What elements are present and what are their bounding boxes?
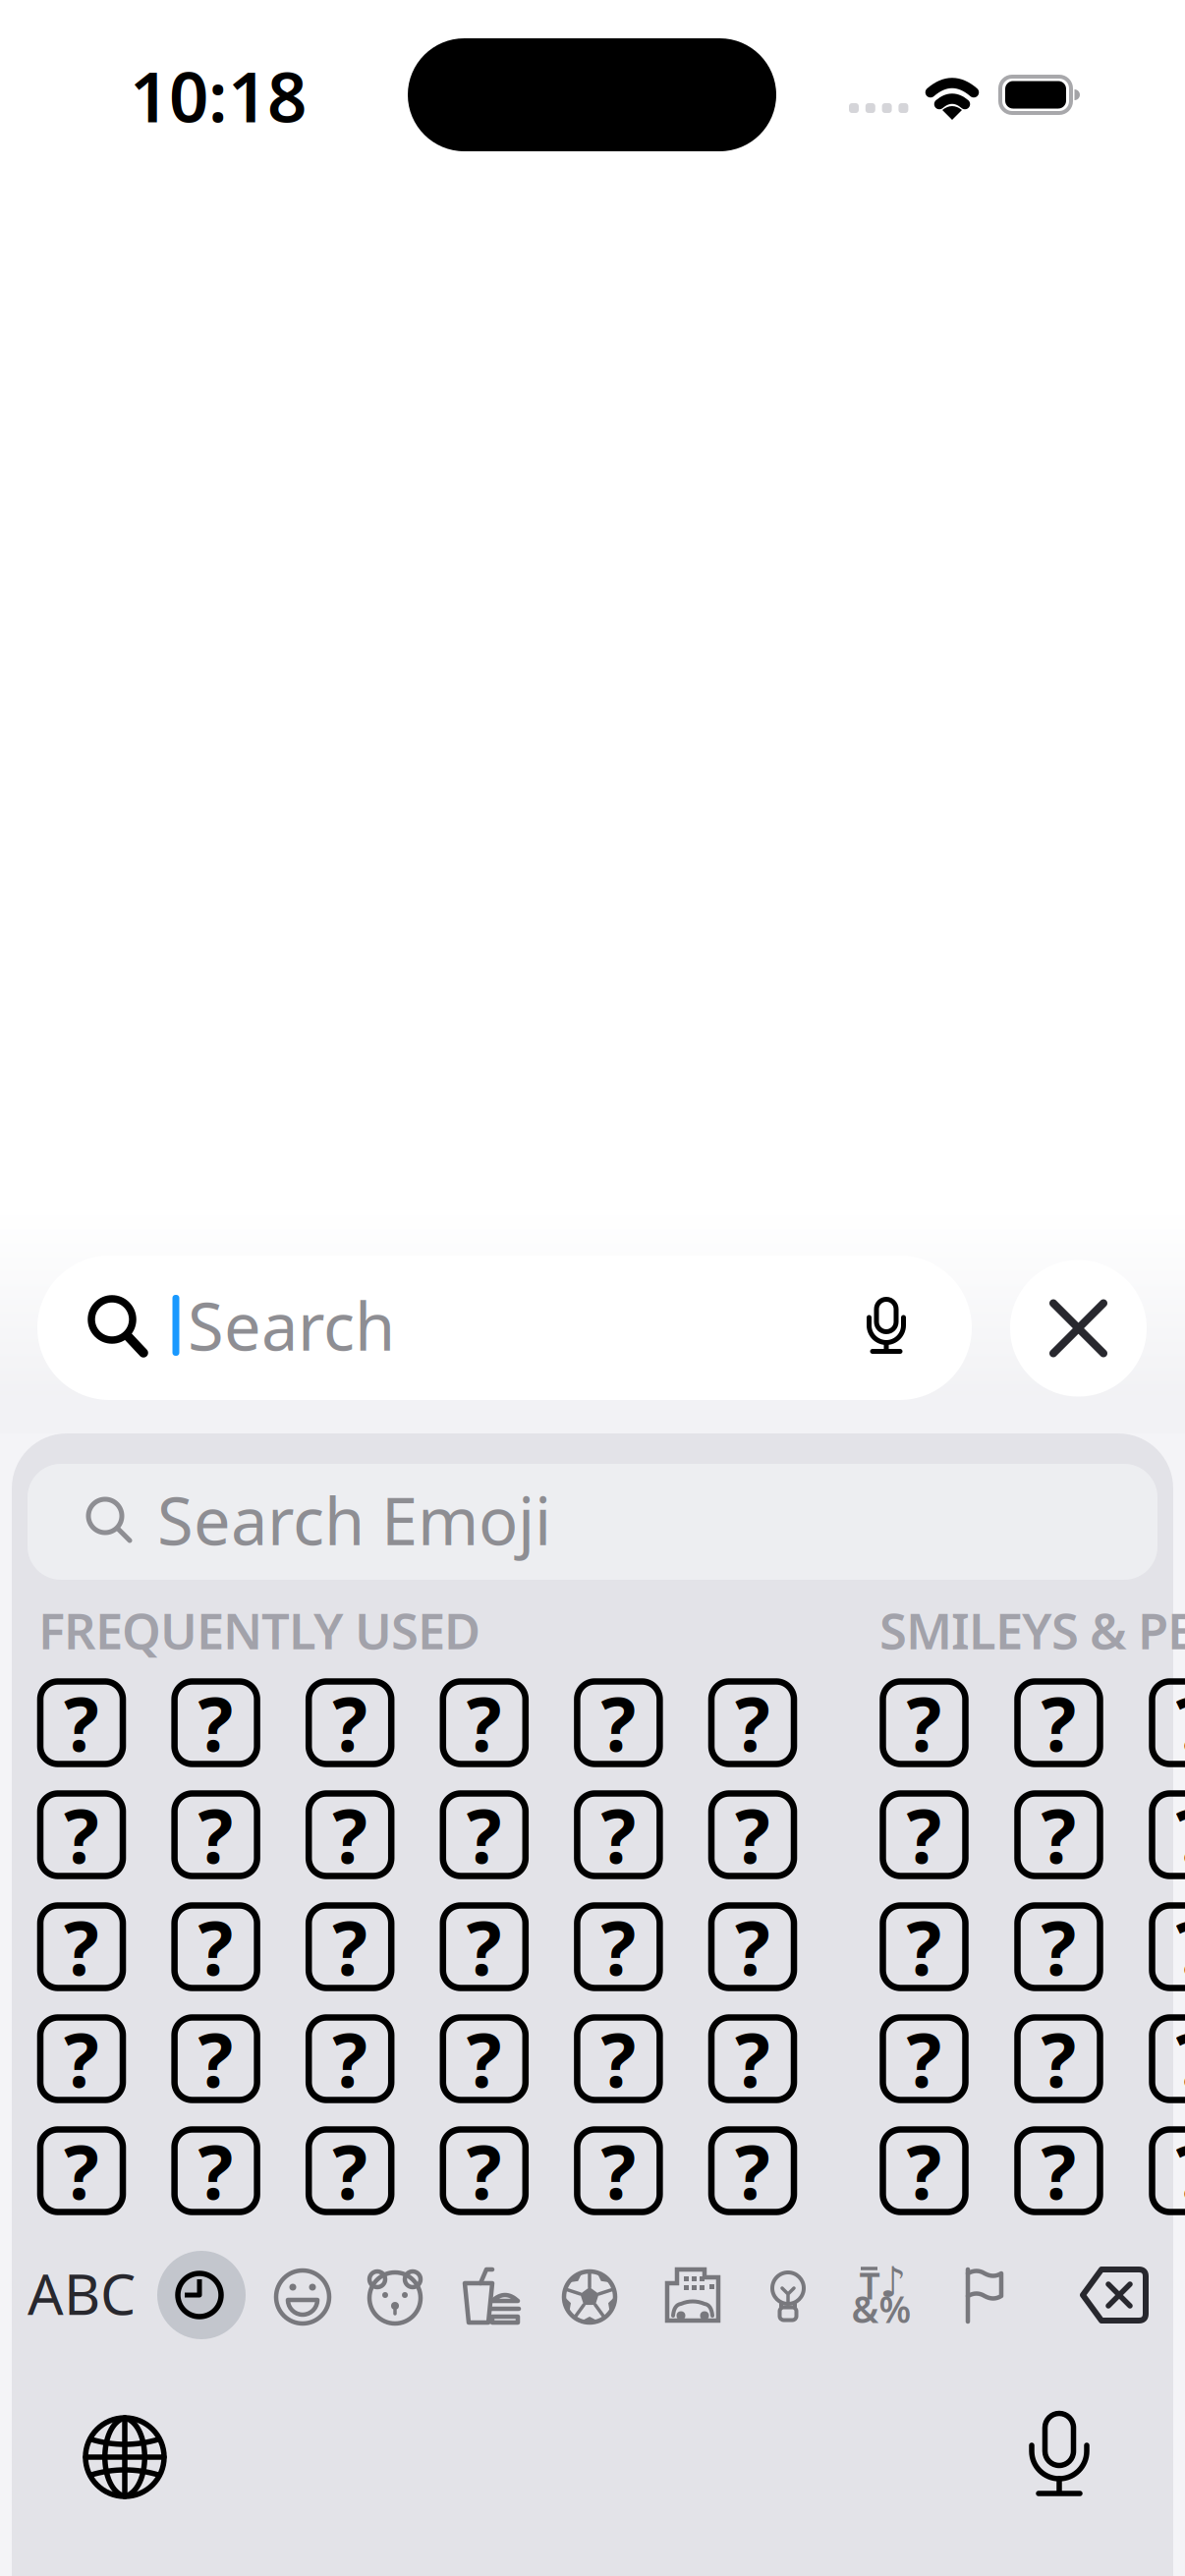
button[interactable]: ? [0, 0, 1185, 2576]
button[interactable]: ? [0, 0, 1185, 2576]
staticText: ? [64, 1674, 99, 1771]
button[interactable]: ? [0, 0, 1185, 2576]
staticText: FREQUENTLY USED [38, 1597, 480, 1663]
button[interactable]: ? [0, 0, 1185, 2576]
staticText: ABC [28, 2256, 136, 2330]
staticText: ? [1041, 1674, 1076, 1771]
button[interactable] [0, 0, 1185, 2576]
button[interactable]: ? [0, 0, 1185, 2576]
button[interactable] [0, 0, 1185, 2576]
button[interactable]: ? [0, 0, 1185, 2576]
button[interactable] [0, 0, 1185, 2576]
button[interactable]: Search [0, 0, 1185, 2576]
button[interactable]: ? [0, 0, 1185, 2576]
button[interactable]: ? [0, 0, 1185, 2576]
staticText: ? [467, 2122, 502, 2219]
staticText: ? [332, 1898, 368, 1995]
button[interactable] [0, 0, 1185, 2576]
staticText: ? [735, 2010, 770, 2107]
button[interactable]: ? [0, 0, 1185, 2576]
button[interactable]: ? [0, 0, 1185, 2576]
staticText: ? [906, 2010, 942, 2107]
button[interactable]: ? [0, 0, 1185, 2576]
button[interactable]: ? [0, 0, 1185, 2576]
button[interactable]: ? [0, 0, 1185, 2576]
staticText: ? [332, 1786, 368, 1883]
button[interactable]: ? [0, 0, 1185, 2576]
staticText: ? [64, 2010, 99, 2107]
button[interactable] [0, 0, 1185, 2576]
button[interactable] [0, 0, 1185, 2576]
button[interactable]: ? [0, 0, 1185, 2576]
button[interactable]: ? [0, 0, 1185, 2576]
button[interactable]: ? [0, 0, 1185, 2576]
staticText: ? [1041, 2010, 1076, 2107]
button[interactable]: ? [0, 0, 1185, 2576]
button[interactable]: ? [0, 0, 1185, 2576]
staticText: T [859, 2261, 880, 2310]
staticText: ? [467, 1674, 502, 1771]
staticText: ? [64, 1898, 99, 1995]
button[interactable]: ? [0, 0, 1185, 2576]
staticText: ? [467, 1786, 502, 1883]
button[interactable]: ? [0, 0, 1185, 2576]
staticText: ? [332, 1674, 368, 1771]
button[interactable]: ? [0, 0, 1185, 2576]
staticText: ? [601, 1898, 636, 1995]
button[interactable]: ? [0, 0, 1185, 2576]
staticText: ? [1041, 1898, 1076, 1995]
staticText: ? [601, 1786, 636, 1883]
staticText: ? [1041, 2122, 1076, 2219]
staticText: ? [1176, 2010, 1185, 2107]
button[interactable] [0, 0, 1185, 2576]
button[interactable]: ? [0, 0, 1185, 2576]
staticText: ? [906, 1898, 942, 1995]
staticText: ? [198, 2010, 233, 2107]
button[interactable]: ? [0, 0, 1185, 2576]
button[interactable]: ? [0, 0, 1185, 2576]
button[interactable] [0, 0, 1185, 2576]
staticText: ? [601, 1674, 636, 1771]
button[interactable]: ? [0, 0, 1185, 2576]
button[interactable] [0, 0, 1185, 2576]
button[interactable]: ? [0, 0, 1185, 2576]
button[interactable]: Search Emoji [0, 0, 1185, 2576]
button[interactable]: ? [0, 0, 1185, 2576]
staticText: ? [1176, 1898, 1185, 1995]
staticText: ? [467, 1898, 502, 1995]
staticText: ? [198, 1898, 233, 1995]
button[interactable]: ? [0, 0, 1185, 2576]
button[interactable]: ? [0, 0, 1185, 2576]
button[interactable]: T [0, 0, 1185, 2576]
staticText: ? [906, 2122, 942, 2219]
button[interactable] [0, 0, 1185, 2576]
button[interactable]: ? [0, 0, 1185, 2576]
button[interactable]: ? [0, 0, 1185, 2576]
staticText: ? [198, 1674, 233, 1771]
button[interactable]: ? [0, 0, 1185, 2576]
staticText: ? [64, 1786, 99, 1883]
button[interactable]: ? [0, 0, 1185, 2576]
button[interactable]: ? [0, 0, 1185, 2576]
staticText: ? [1041, 1786, 1076, 1883]
staticText: ? [735, 2122, 770, 2219]
staticText: ? [332, 2122, 368, 2219]
button[interactable]: ? [0, 0, 1185, 2576]
button[interactable]: ? [0, 0, 1185, 2576]
button[interactable]: ? [0, 0, 1185, 2576]
button[interactable]: ? [0, 0, 1185, 2576]
staticText: ? [601, 2010, 636, 2107]
button[interactable] [0, 0, 1185, 2576]
button[interactable]: ABC [0, 0, 1185, 2576]
staticText: ? [906, 1674, 942, 1771]
staticText: Search Emoji [157, 1476, 551, 1563]
button[interactable]: ? [0, 0, 1185, 2576]
button[interactable]: ? [0, 0, 1185, 2576]
button[interactable]: ? [0, 0, 1185, 2576]
staticText: ? [601, 2122, 636, 2219]
staticText: &% [851, 2284, 911, 2333]
staticText: SMILEYS & PEOPLE [879, 1597, 1185, 1663]
button[interactable] [0, 0, 1185, 2576]
button[interactable]: ? [0, 0, 1185, 2576]
button[interactable]: ? [0, 0, 1185, 2576]
